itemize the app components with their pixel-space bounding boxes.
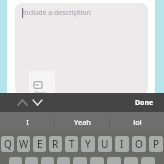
button[interactable]: I <box>0 112 54 132</box>
button[interactable] <box>73 157 87 164</box>
button[interactable] <box>90 157 104 164</box>
staticText: Done <box>135 98 154 108</box>
staticText: O <box>135 137 143 151</box>
staticText: lol <box>133 117 142 127</box>
button[interactable]: lol <box>110 112 164 132</box>
button[interactable]: P <box>149 136 163 152</box>
staticText: Y <box>85 137 91 151</box>
staticText: U <box>101 137 109 151</box>
button[interactable]: U <box>98 136 112 152</box>
button[interactable]: T <box>65 136 78 152</box>
button[interactable]: E <box>33 136 46 152</box>
button[interactable]: Done <box>133 95 156 111</box>
button[interactable]: W <box>17 136 30 152</box>
button[interactable] <box>141 157 155 164</box>
button[interactable] <box>41 157 54 164</box>
button[interactable] <box>57 157 70 164</box>
staticText: R <box>52 137 59 151</box>
button[interactable]: Add media <box>29 71 55 95</box>
button[interactable]: Y <box>81 136 95 152</box>
staticText: W <box>19 137 29 151</box>
staticText: Yeah <box>74 117 91 127</box>
staticText: P <box>153 137 160 151</box>
button[interactable] <box>25 157 38 164</box>
button[interactable]: Q <box>1 136 14 152</box>
button[interactable] <box>124 157 138 164</box>
staticText: E <box>37 137 43 151</box>
button[interactable]: I <box>115 136 129 152</box>
button[interactable]: Previous field <box>14 93 30 112</box>
button[interactable] <box>107 157 121 164</box>
staticText: Q <box>4 137 12 151</box>
button[interactable]: Yeah <box>55 112 109 132</box>
staticText: T <box>69 137 75 151</box>
button[interactable]: R <box>49 136 62 152</box>
staticText: I <box>120 137 124 151</box>
button[interactable]: Next field <box>29 93 45 112</box>
staticText: I <box>26 117 29 127</box>
staticText: Photo <box>34 90 47 95</box>
button[interactable] <box>9 157 22 164</box>
button[interactable]: O <box>132 136 146 152</box>
button[interactable]: Include a description <box>15 3 148 95</box>
staticText: Include a description <box>22 8 91 18</box>
